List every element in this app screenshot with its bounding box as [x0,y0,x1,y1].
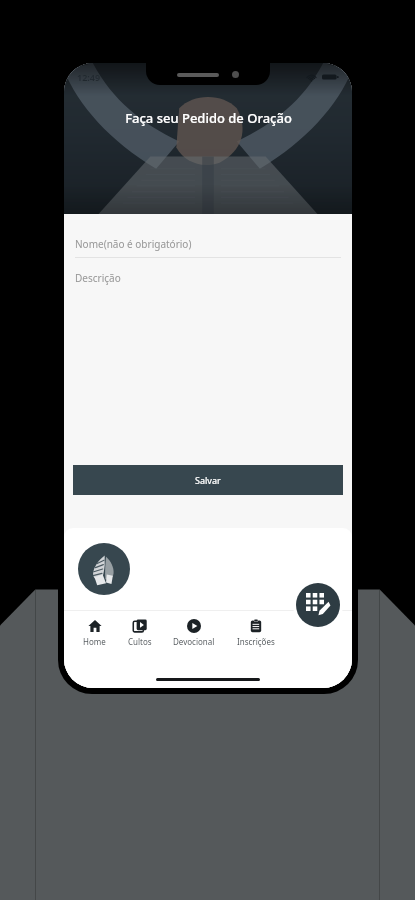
staticText: 12:49 [77,71,101,83]
button[interactable]: Salvar [73,465,343,495]
staticText: Descrição [75,271,121,285]
button[interactable]: Novo pedido [296,583,340,627]
staticText: Home [83,636,106,647]
staticText: Inscrições [237,636,275,647]
staticText: Cultos [128,636,152,647]
staticText: Nome(não é obrigatório) [75,237,192,251]
button[interactable]: Home [80,617,109,649]
button[interactable]: Descrição [64,264,352,297]
staticText: Faça seu Pedido de Oração [125,109,292,127]
button[interactable]: Inscrições [234,617,278,649]
button[interactable]: Devocional [170,617,218,649]
staticText: Devocional [173,636,215,647]
staticText: Salvar [195,474,221,486]
button[interactable]: Nome(não é obrigatório) [64,230,352,264]
button[interactable]: Cultos [125,617,155,649]
button[interactable] [64,528,352,610]
